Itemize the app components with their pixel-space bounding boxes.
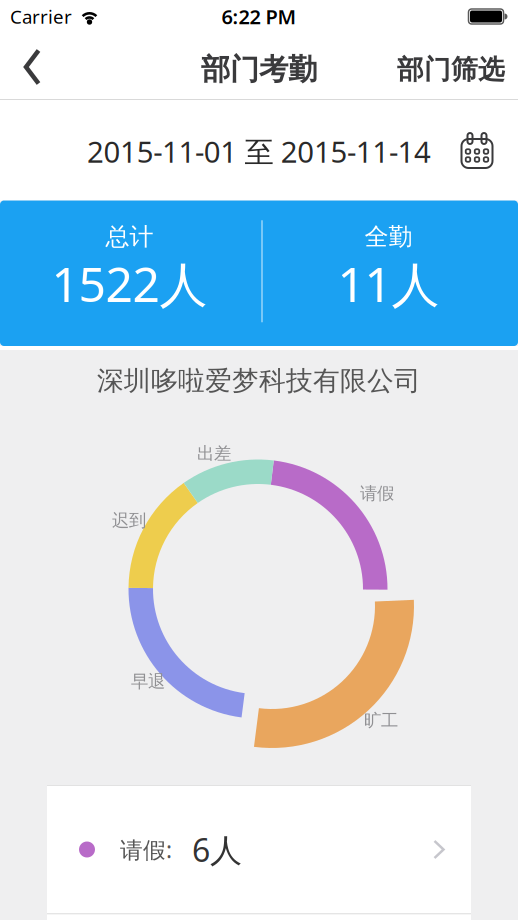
staticText: 迟到 (112, 510, 146, 531)
staticText: 11人 (337, 252, 439, 315)
staticText: 2015-11-01 至 2015-11-14 (87, 132, 431, 171)
staticText: Carrier (10, 4, 72, 29)
staticText: 请假: (120, 834, 172, 864)
button[interactable]: 部门筛选 (397, 50, 518, 82)
staticText: 6人 (192, 828, 242, 871)
staticText: 部门考勤 (201, 51, 317, 87)
staticText: 旷工 (364, 710, 398, 731)
staticText: 请假 (360, 483, 394, 504)
button[interactable]: 2015-11-01 至 2015-11-14 (0, 99, 518, 200)
button[interactable]: 请假: (47, 786, 471, 913)
staticText: 1522人 (51, 252, 207, 315)
staticText: 部门筛选 (397, 53, 505, 86)
staticText: 6:22 PM (221, 3, 296, 30)
button[interactable] (0, 48, 50, 84)
staticText: 出差 (197, 443, 231, 464)
staticText: 全勤 (364, 222, 412, 252)
staticText: 总计 (105, 222, 153, 252)
staticText: 早退 (131, 671, 165, 692)
staticText: 深圳哆啦爱梦科技有限公司 (97, 364, 421, 397)
